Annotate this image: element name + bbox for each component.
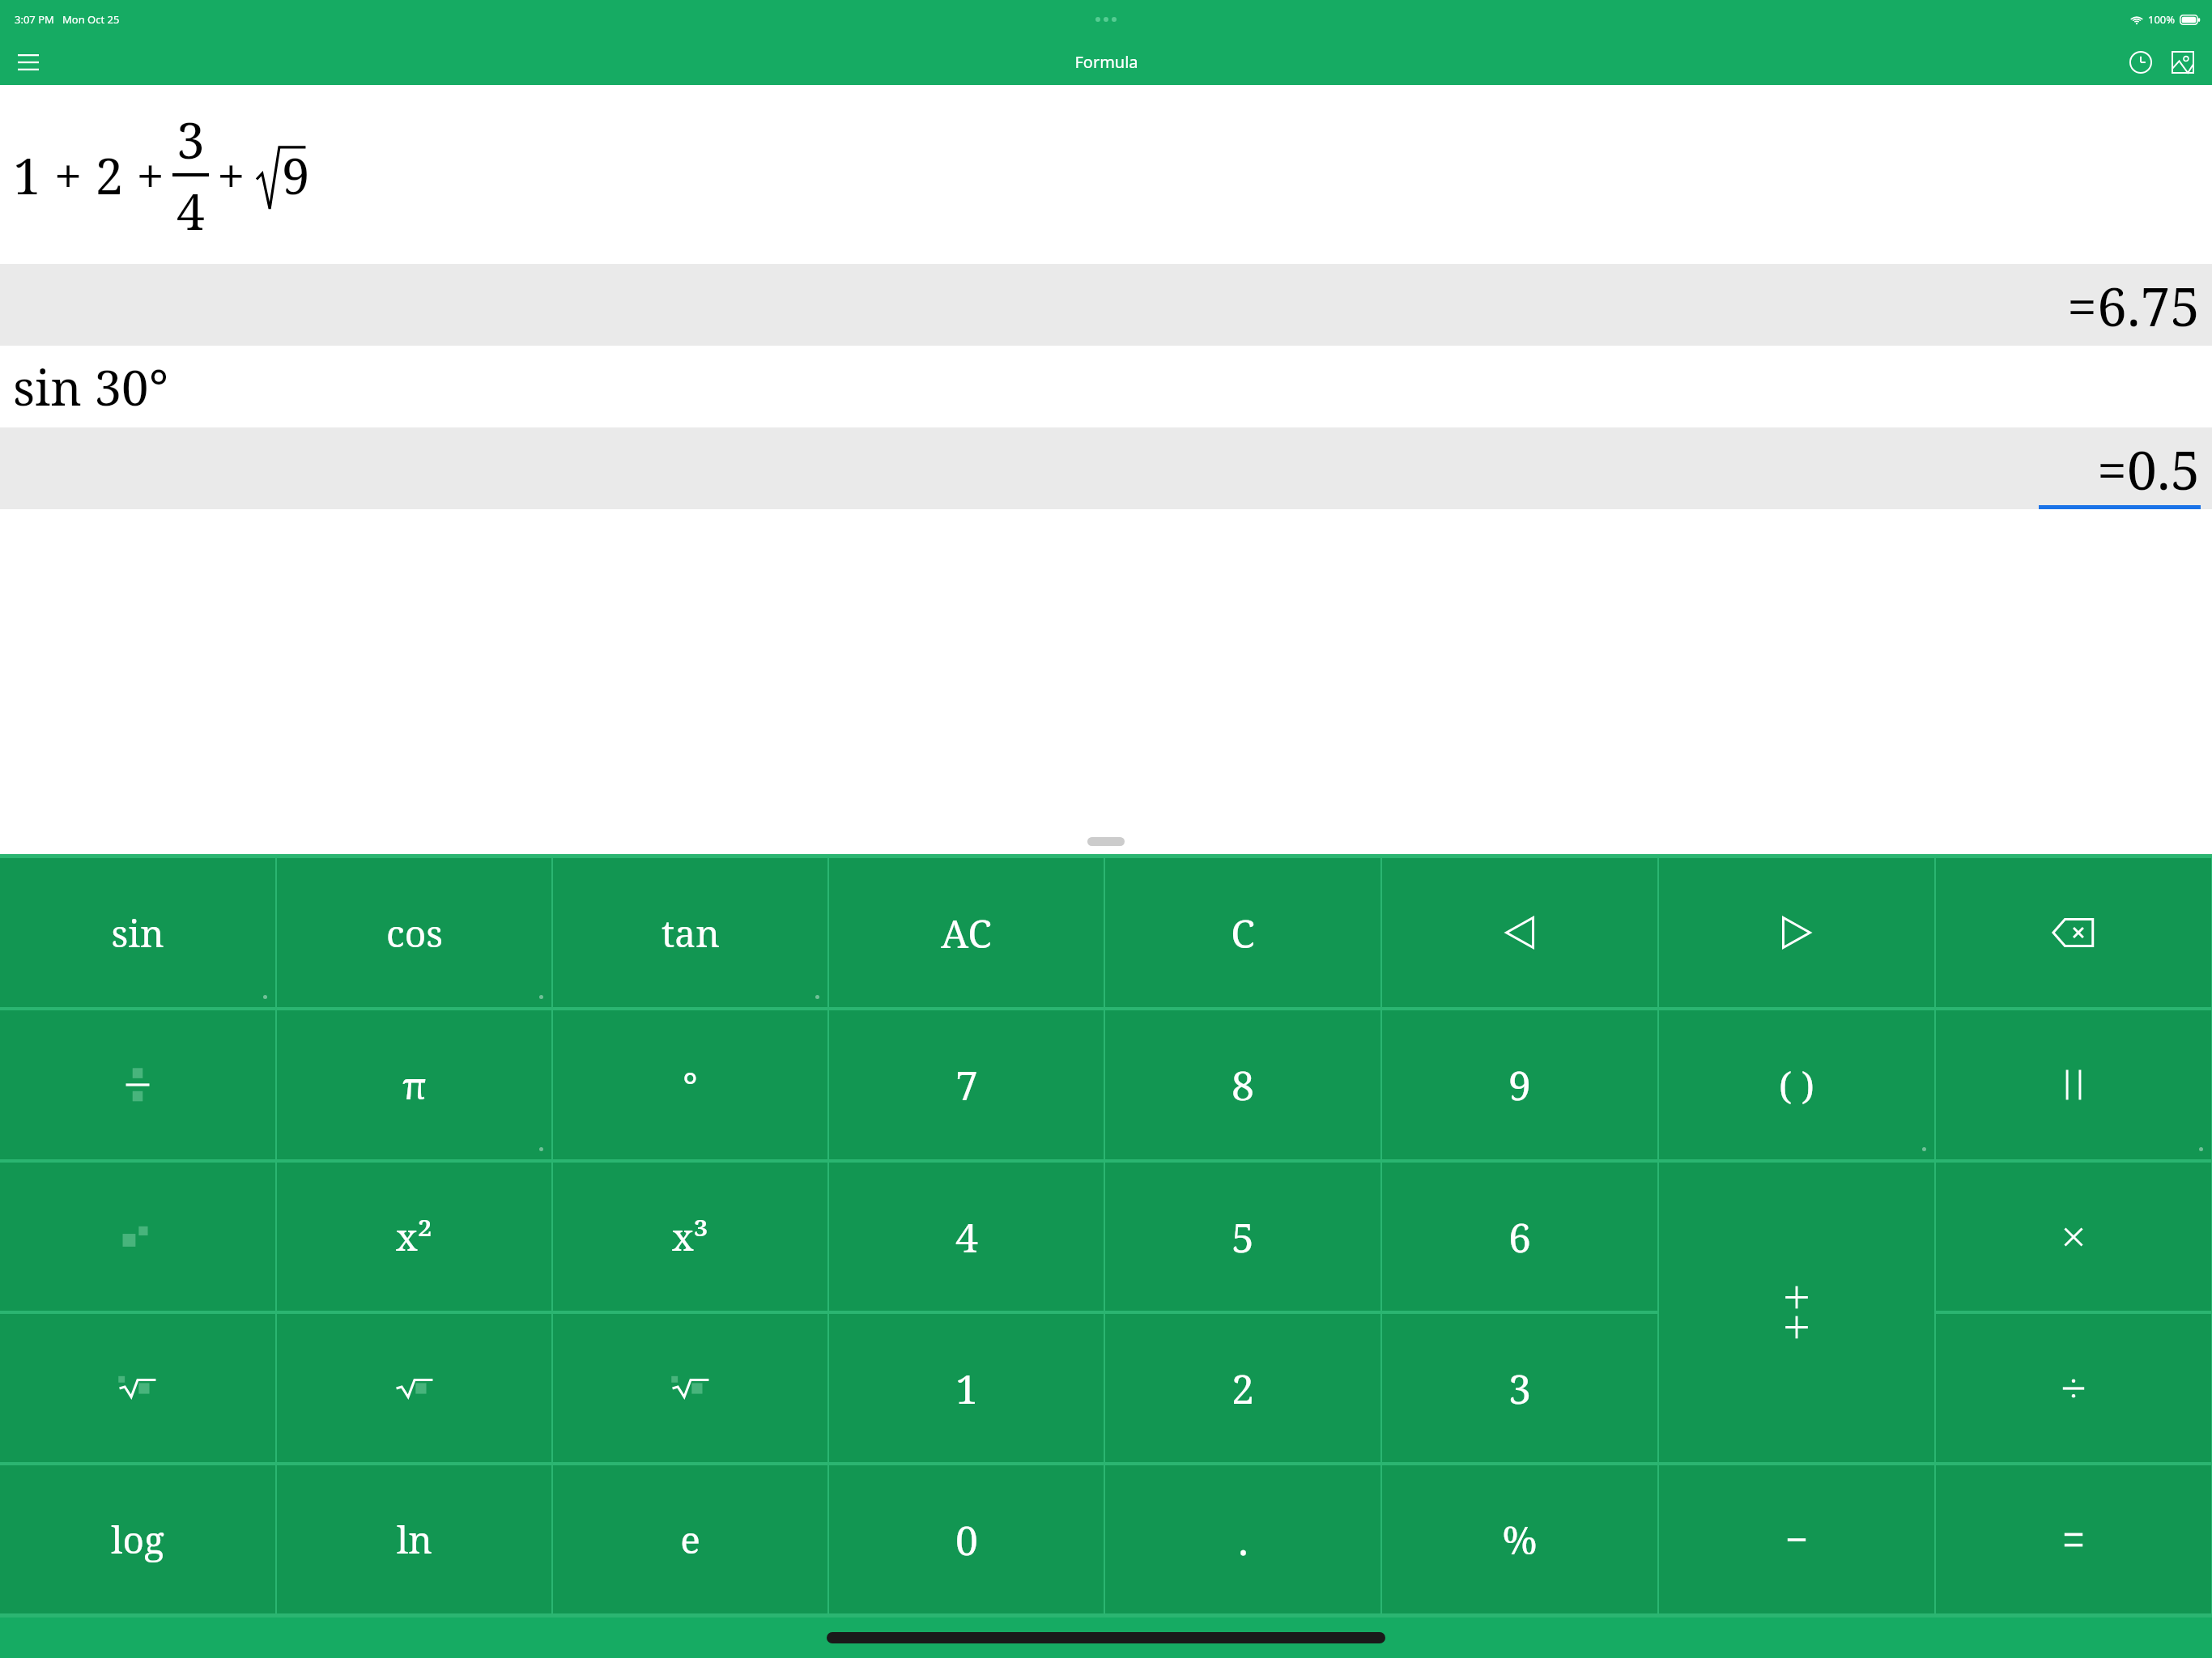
button[interactable]: e [553, 1465, 827, 1613]
button[interactable]: Move cursor left [1382, 858, 1657, 1007]
staticText: 5 [1231, 1209, 1254, 1265]
staticText: ° [683, 1060, 698, 1111]
button[interactable]: 9 [1382, 1010, 1657, 1159]
staticText: π [402, 1060, 427, 1111]
button[interactable]: Nth root [0, 1314, 275, 1462]
button[interactable]: Multiply [1936, 1163, 2211, 1311]
button[interactable]: C [1105, 858, 1380, 1007]
button[interactable]: Backspace [1936, 858, 2211, 1007]
button[interactable]: 8 [1105, 1010, 1380, 1159]
button[interactable]: 6 [1382, 1163, 1657, 1311]
button[interactable]: Minus [1659, 1465, 1934, 1613]
other: Backspace [2047, 906, 2100, 959]
staticText: 6.75 [2097, 269, 2201, 342]
button[interactable]: sin [0, 858, 275, 1007]
button[interactable]: 5 [1105, 1163, 1380, 1311]
other: Power [111, 1210, 164, 1264]
staticText: log [111, 1514, 164, 1565]
other: Minus [1770, 1513, 1823, 1567]
staticText: . [1238, 1512, 1249, 1567]
button[interactable]: x² [277, 1163, 551, 1311]
button[interactable]: Image [2162, 41, 2204, 83]
button[interactable]: 3 [1382, 1314, 1657, 1462]
button[interactable]: x³ [553, 1163, 827, 1311]
other: Multiply [2047, 1210, 2100, 1264]
button[interactable]: 1 + 2 + [0, 85, 2212, 264]
staticText: 6 [1508, 1209, 1531, 1265]
staticText: sin 30 [13, 354, 149, 420]
button[interactable]: History [2120, 41, 2162, 83]
button[interactable]: Plus [1659, 1163, 1934, 1312]
other: Fraction [111, 1058, 164, 1112]
staticText: 1 [955, 1361, 978, 1416]
staticText: Mon Oct 25 [62, 12, 120, 27]
button[interactable]: ° [553, 1010, 827, 1159]
staticText: 3:07 PM [15, 12, 54, 27]
other: Plus [1770, 1259, 1823, 1312]
button[interactable]: Resize keypad [1087, 837, 1125, 846]
button[interactable]: = [0, 427, 2212, 509]
other: Square root [388, 1362, 441, 1415]
staticText: ln [397, 1514, 432, 1565]
staticText: 0.5 [2127, 432, 2201, 505]
staticText: 9 [1508, 1057, 1531, 1112]
staticText: 3 [177, 105, 205, 173]
button[interactable]: π [277, 1010, 551, 1159]
other: Cube root [664, 1362, 717, 1415]
button[interactable]: Power [0, 1163, 275, 1311]
staticText: 3 [1508, 1361, 1531, 1416]
button[interactable]: Cube root [553, 1314, 827, 1462]
button[interactable]: cos [277, 858, 551, 1007]
staticText: + [217, 141, 245, 209]
other: Nth root [111, 1362, 164, 1415]
staticText: cos [386, 908, 443, 959]
button[interactable]: ln [277, 1465, 551, 1613]
staticText: 7 [955, 1057, 978, 1112]
staticText: e [680, 1514, 700, 1565]
button[interactable]: Absolute value [1936, 1010, 2211, 1159]
staticText: C [1231, 907, 1255, 959]
button[interactable]: Fraction [0, 1010, 275, 1159]
staticText: ( ) [1779, 1060, 1814, 1111]
button[interactable]: 0 [829, 1465, 1104, 1613]
staticText: 4 [955, 1209, 978, 1265]
staticText: % [1502, 1513, 1538, 1566]
button[interactable]: = [0, 264, 2212, 346]
staticText: 100% [2148, 12, 2176, 27]
button[interactable]: Divide [1936, 1314, 2211, 1462]
button[interactable]: sin 30 [0, 346, 2212, 427]
staticText: x² [396, 1211, 432, 1262]
other: Move cursor right [1770, 906, 1823, 959]
other: Move cursor left [1493, 906, 1546, 959]
button[interactable]: AC [829, 858, 1104, 1007]
button[interactable]: 2 [1105, 1314, 1380, 1462]
button[interactable]: tan [553, 858, 827, 1007]
staticText: 2 [1231, 1361, 1254, 1416]
button[interactable]: Move cursor right [1659, 858, 1934, 1007]
staticText: AC [941, 907, 992, 959]
button[interactable]: Menu [6, 40, 50, 84]
staticText: tan [661, 908, 720, 959]
button[interactable]: Equals [1936, 1465, 2211, 1613]
staticText: 4 [177, 176, 205, 244]
other: Equals [2047, 1513, 2100, 1567]
staticText: 1 + 2 + [13, 141, 164, 209]
button[interactable]: Square root [277, 1314, 551, 1462]
button[interactable]: Plus [1659, 1312, 1934, 1462]
button[interactable]: . [1105, 1465, 1380, 1613]
staticText: 0 [955, 1512, 978, 1567]
button[interactable]: % [1382, 1465, 1657, 1613]
button[interactable]: 4 [829, 1163, 1104, 1311]
button[interactable]: 7 [829, 1010, 1104, 1159]
staticText: 8 [1231, 1057, 1254, 1112]
button[interactable]: log [0, 1465, 275, 1613]
other: Plus [1770, 1312, 1823, 1366]
staticText: Formula [1074, 51, 1138, 73]
button[interactable]: 1 [829, 1314, 1104, 1462]
staticText: ° [149, 354, 168, 420]
button[interactable]: ( ) [1659, 1010, 1934, 1159]
staticText: = [2097, 432, 2127, 505]
staticText: 9 [282, 141, 310, 209]
staticText: x³ [672, 1211, 708, 1262]
other: Absolute value [2047, 1058, 2100, 1112]
